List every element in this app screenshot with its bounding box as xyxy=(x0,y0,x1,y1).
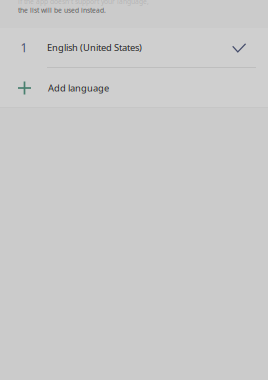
button[interactable]: Add language xyxy=(0,68,268,108)
staticText: the list will be used instead. xyxy=(18,6,106,15)
staticText: if the app doesn't support your language… xyxy=(18,0,149,6)
staticText: Add language xyxy=(48,82,109,94)
staticText: English (United States) xyxy=(47,41,142,54)
button[interactable]: 1 xyxy=(0,28,268,67)
staticText: 1 xyxy=(20,39,27,55)
